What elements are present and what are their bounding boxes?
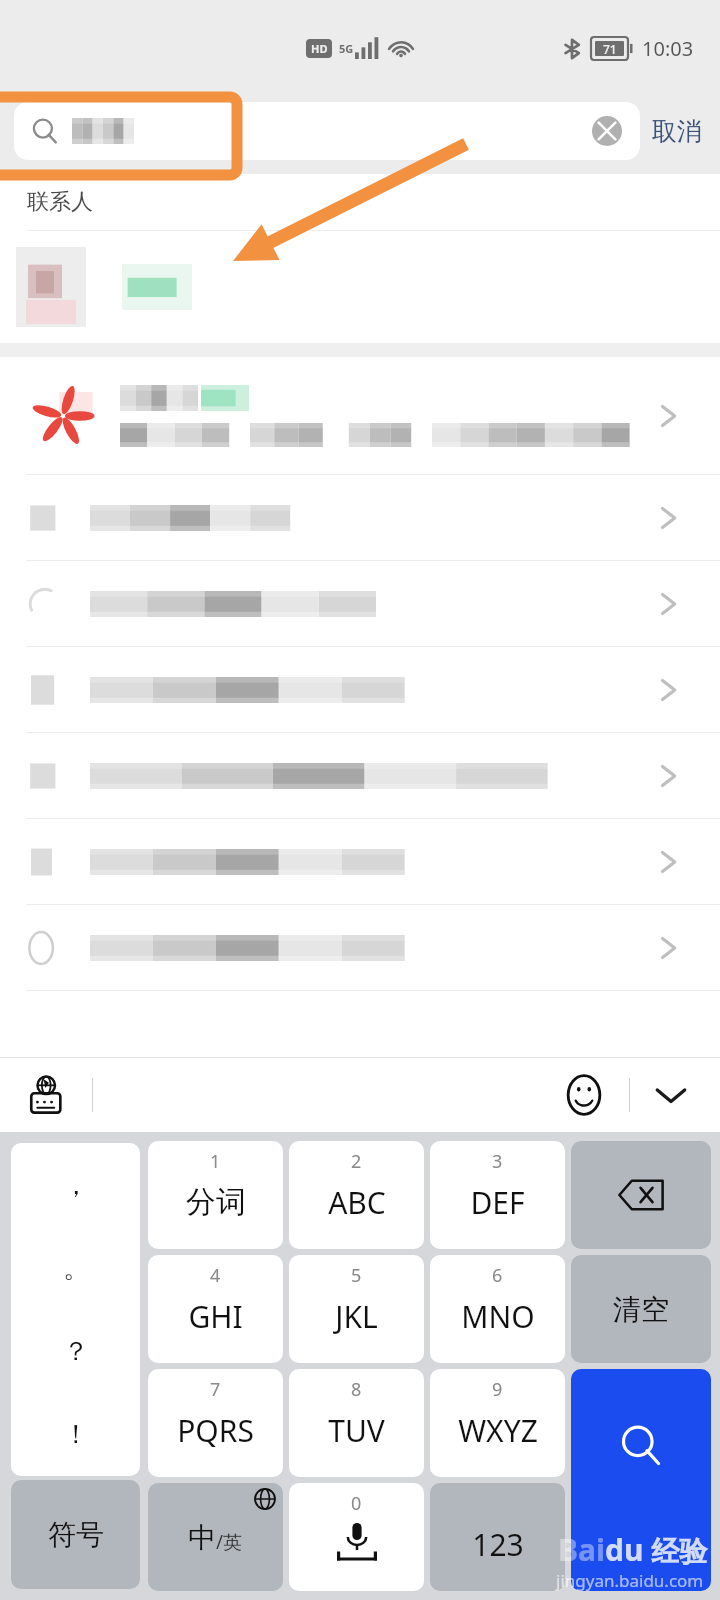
button[interactable]: Backspace bbox=[571, 1141, 711, 1249]
button[interactable] bbox=[0, 561, 720, 646]
button[interactable]: 8 bbox=[289, 1369, 424, 1477]
staticText: 2 bbox=[351, 1149, 362, 1174]
button[interactable] bbox=[0, 819, 720, 904]
staticText: 中 bbox=[188, 1520, 216, 1555]
staticText: du bbox=[605, 1529, 644, 1570]
button[interactable]: 0 bbox=[289, 1483, 424, 1591]
button[interactable]: 3 bbox=[430, 1141, 565, 1249]
button[interactable]: 4 bbox=[148, 1255, 283, 1363]
staticText: ABC bbox=[328, 1182, 386, 1223]
staticText: HD bbox=[311, 41, 328, 56]
button[interactable]: 5 bbox=[289, 1255, 424, 1363]
button[interactable]: 6 bbox=[430, 1255, 565, 1363]
button[interactable]: 7 bbox=[148, 1369, 283, 1477]
staticText: 联系人 bbox=[27, 188, 93, 216]
staticText: 6 bbox=[492, 1263, 503, 1288]
staticText: DEF bbox=[470, 1182, 525, 1223]
staticText: ？ bbox=[63, 1335, 89, 1368]
staticText: 符号 bbox=[48, 1517, 104, 1552]
staticText: 1 bbox=[210, 1149, 221, 1174]
staticText: 。 bbox=[63, 1252, 89, 1285]
button[interactable]: 符号 bbox=[11, 1480, 140, 1589]
staticText: TUV bbox=[328, 1410, 385, 1451]
button[interactable]: 清空 bbox=[571, 1255, 711, 1363]
button[interactable]: Search bbox=[571, 1369, 711, 1591]
staticText: Bai bbox=[558, 1529, 605, 1570]
button[interactable]: Switch input method bbox=[22, 1069, 74, 1121]
button[interactable] bbox=[0, 231, 720, 343]
button[interactable]: Clear bbox=[14, 102, 640, 160]
staticText: jingyan.baidu.com bbox=[556, 1569, 704, 1592]
staticText: 0 bbox=[351, 1491, 362, 1516]
staticText: 3 bbox=[492, 1149, 503, 1174]
button[interactable]: 中 bbox=[148, 1483, 283, 1591]
staticText: 10:03 bbox=[642, 35, 694, 62]
staticText: 5 bbox=[351, 1263, 362, 1288]
staticText: 71 bbox=[603, 41, 617, 57]
button[interactable] bbox=[0, 475, 720, 560]
button[interactable] bbox=[0, 905, 720, 990]
button[interactable] bbox=[0, 733, 720, 818]
staticText: 分词 bbox=[186, 1183, 246, 1221]
staticText: ， bbox=[63, 1169, 89, 1202]
staticText: PQRS bbox=[177, 1410, 254, 1451]
staticText: 经验 bbox=[644, 1531, 708, 1569]
button[interactable]: ， bbox=[11, 1143, 140, 1476]
staticText: 清空 bbox=[613, 1292, 669, 1327]
staticText: 取消 bbox=[652, 116, 702, 147]
staticText: GHI bbox=[188, 1296, 243, 1337]
button[interactable]: 1 bbox=[148, 1141, 283, 1249]
button[interactable]: Emoji bbox=[557, 1068, 611, 1122]
staticText: 123 bbox=[472, 1524, 524, 1565]
staticText: 5G bbox=[339, 41, 354, 56]
button[interactable] bbox=[0, 647, 720, 732]
staticText: /英 bbox=[216, 1529, 243, 1555]
staticText: ！ bbox=[63, 1418, 89, 1451]
staticText: 4 bbox=[210, 1263, 221, 1288]
button[interactable]: 2 bbox=[289, 1141, 424, 1249]
staticText: 8 bbox=[351, 1377, 362, 1402]
staticText: 7 bbox=[210, 1377, 221, 1402]
button[interactable]: Hide keyboard bbox=[644, 1068, 698, 1122]
staticText: JKL bbox=[335, 1296, 378, 1337]
staticText: MNO bbox=[461, 1296, 535, 1337]
staticText: 9 bbox=[492, 1377, 503, 1402]
button[interactable] bbox=[0, 357, 720, 474]
button[interactable]: 取消 bbox=[640, 116, 704, 147]
button[interactable]: 9 bbox=[430, 1369, 565, 1477]
staticText: WXYZ bbox=[458, 1410, 538, 1451]
button[interactable]: 123 bbox=[430, 1483, 565, 1591]
button[interactable]: Clear bbox=[590, 114, 624, 148]
